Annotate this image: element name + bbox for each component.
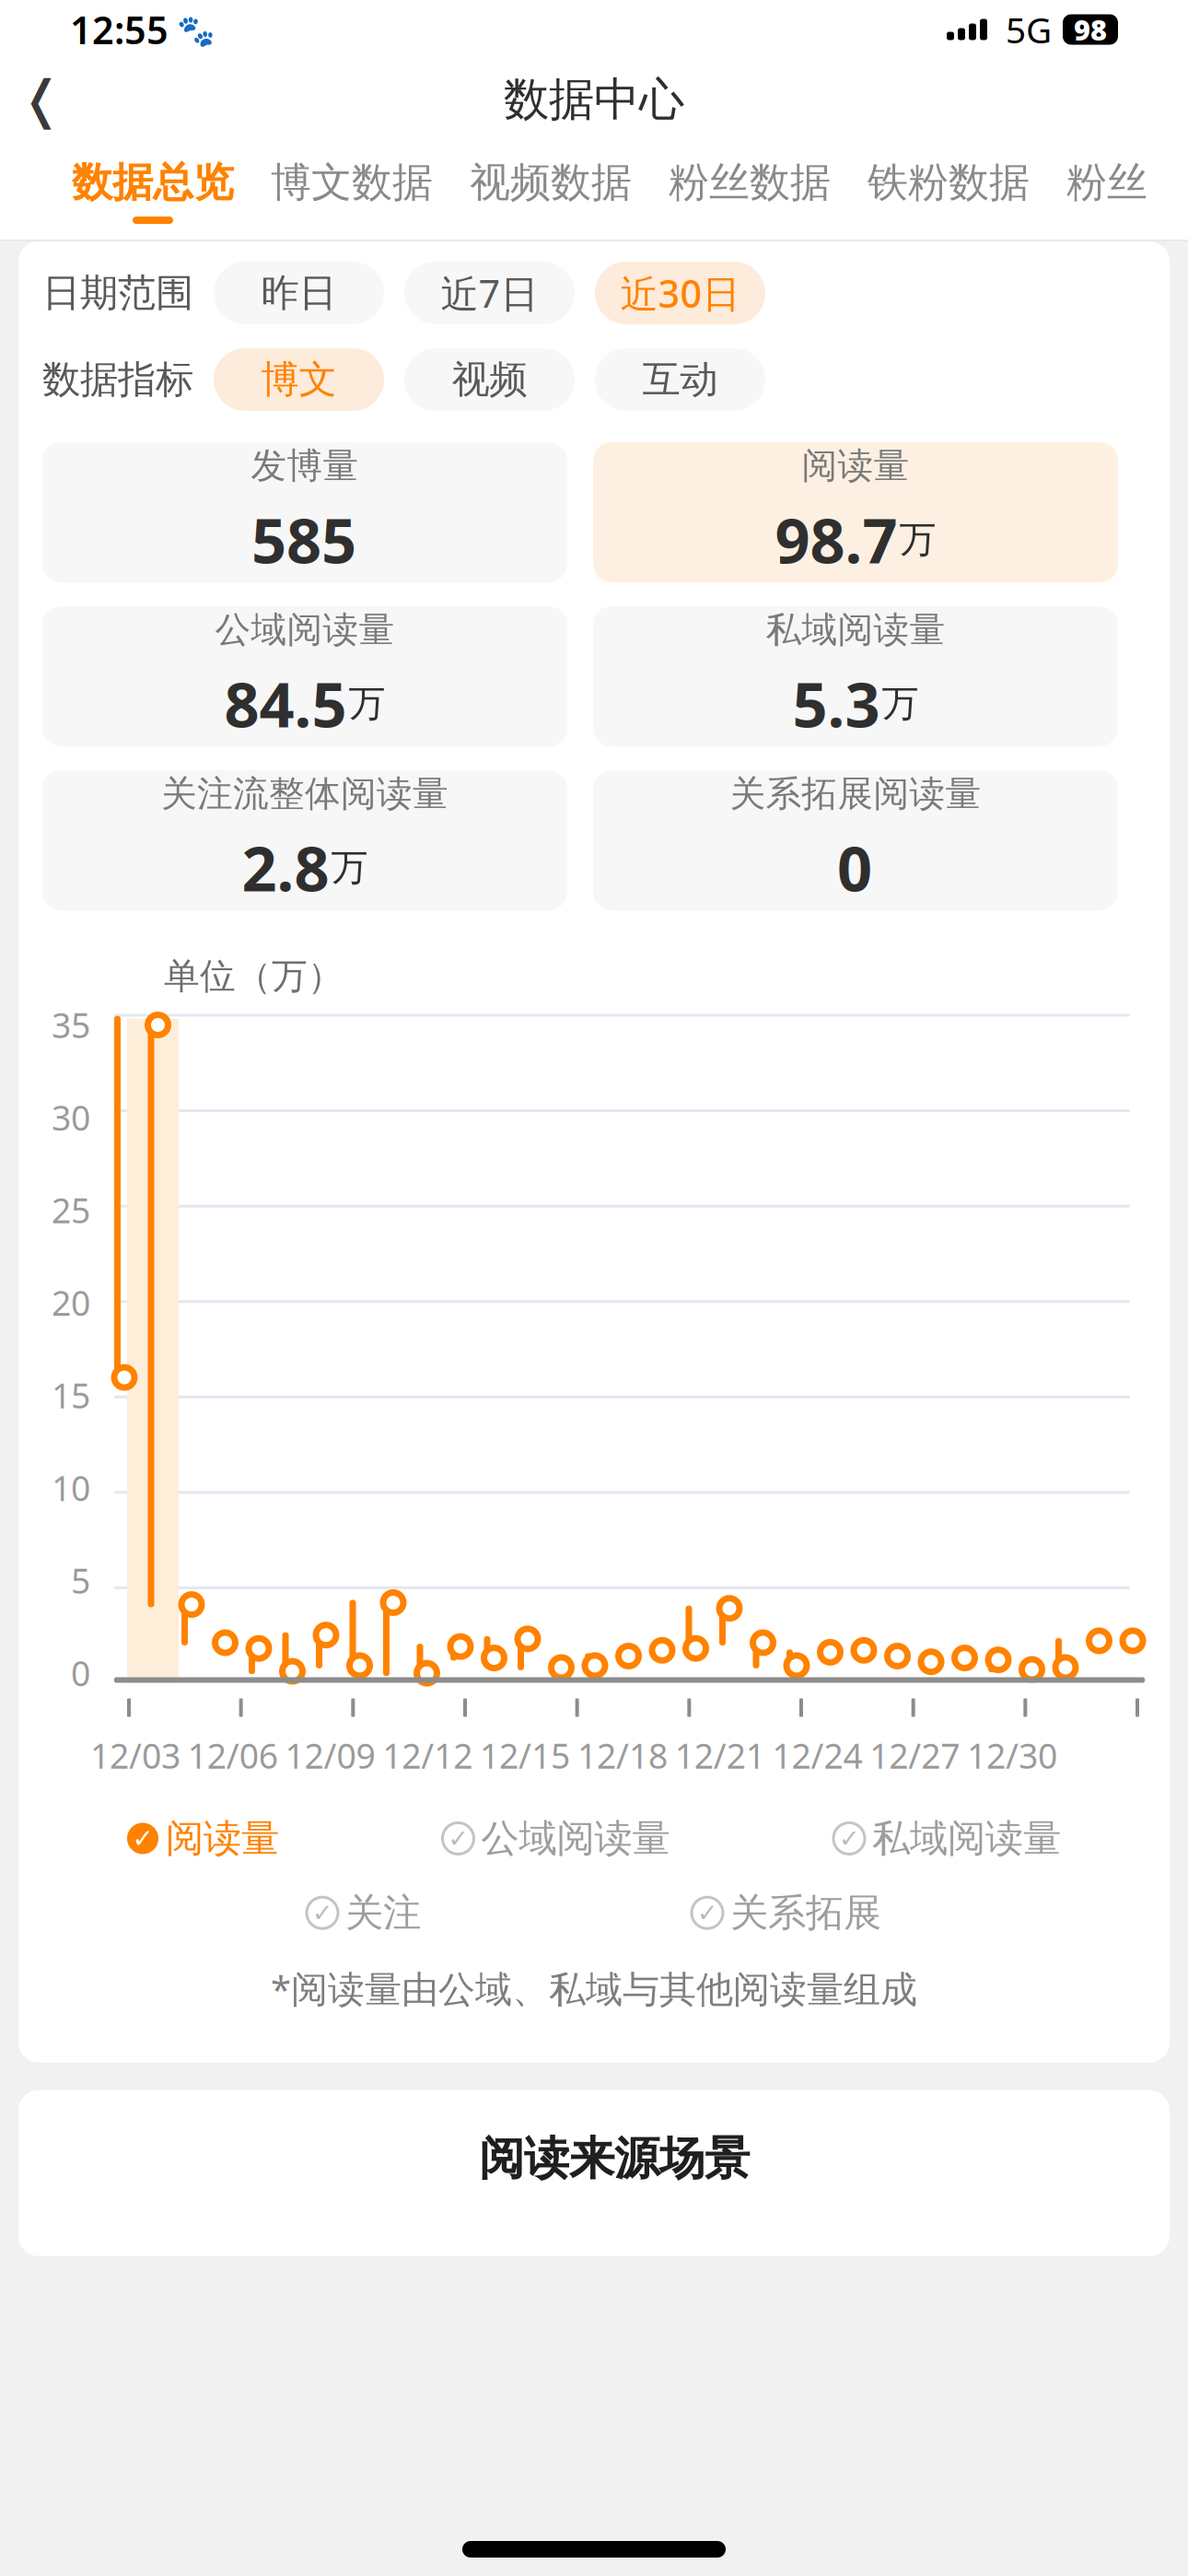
button[interactable]: 昨日 [214,262,384,324]
button[interactable]: 公域阅读量 [42,606,567,746]
staticText: 5G [987,6,1052,53]
staticText: 20 [52,1280,90,1325]
staticText: 万 [882,681,919,726]
staticText: ✓ [697,1899,717,1927]
button[interactable]: 发博量 [42,442,567,582]
staticText: 公域阅读量 [215,608,395,652]
button[interactable]: ✓ [307,1889,421,1936]
staticText: 12/30 [967,1733,1057,1778]
staticText: 585 [251,499,356,580]
staticText: 近7日 [441,268,538,318]
staticText: 12/12 [382,1733,473,1778]
button[interactable]: ✓ [692,1889,881,1936]
staticText: 关系拓展阅读量 [730,772,981,816]
staticText: 昨日 [261,270,337,316]
staticText: 15 [52,1372,90,1418]
staticText: 阅读量 [802,444,909,488]
button[interactable]: 粉丝数据 [669,154,831,228]
staticText: 近30日 [620,268,740,318]
staticText: 万 [349,681,385,726]
staticText: 5 [71,1557,90,1603]
staticText: 🐾 [169,9,215,50]
staticText: 0 [71,1650,90,1696]
staticText: 关注 [345,1889,421,1936]
button[interactable]: 铁粉数据 [868,154,1030,228]
staticText: 万 [899,517,936,562]
button[interactable]: ✓ [443,1815,670,1862]
staticText: 12/27 [870,1733,960,1778]
staticText: 98.7 [775,499,897,580]
staticText: 日期范围 [42,270,193,316]
staticText: 12:55 [70,4,169,55]
staticText: 98 [1074,11,1107,48]
button[interactable]: Back [0,59,83,140]
staticText: 25 [52,1187,90,1233]
staticText: ✓ [839,1824,859,1852]
button[interactable]: 视频 [404,348,575,411]
staticText: *阅读量由公域、私域与其他阅读量组成 [271,1964,917,2013]
staticText: ✓ [132,1824,153,1853]
staticText: 2.8 [242,827,329,908]
staticText: 铁粉数据 [868,158,1030,207]
staticText: 12/09 [285,1733,375,1778]
staticText: 12/21 [675,1733,765,1778]
staticText: 关系拓展 [730,1889,881,1936]
staticText: 博文数据 [271,158,433,207]
staticText: 阅读量 [166,1815,279,1862]
staticText: 10 [52,1465,90,1510]
staticText: 5.3 [792,663,880,744]
button[interactable]: 数据总览 [72,154,234,228]
staticText: 关注流整体阅读量 [161,772,448,816]
staticText: 发博量 [251,444,359,488]
staticText: 视频 [452,356,527,403]
button[interactable]: 私域阅读量 [593,606,1118,746]
staticText: 84.5 [224,663,347,744]
button[interactable]: 阅读量 [593,442,1118,582]
staticText: ✓ [312,1899,332,1927]
button[interactable]: 关系拓展阅读量 [593,770,1118,910]
button[interactable]: ✓ [833,1815,1061,1862]
staticText: 30 [52,1095,90,1140]
staticText: 12/15 [480,1733,570,1778]
staticText: 单位（万） [164,954,344,998]
staticText: 12/03 [90,1733,181,1778]
button[interactable]: 视频数据 [470,154,632,228]
button[interactable]: 关注流整体阅读量 [42,770,567,910]
staticText: 公域阅读量 [481,1815,670,1862]
button[interactable]: 近7日 [404,262,575,324]
staticText: 互动 [642,356,718,403]
staticText: 12/24 [772,1733,862,1778]
staticText: 0 [837,827,872,908]
button[interactable]: 互动 [595,348,765,411]
staticText: 数据中心 [504,72,684,127]
staticText: 阅读来源场景 [479,2131,750,2187]
button[interactable]: 粉丝 [1066,154,1147,228]
staticText: ❬ [20,70,63,129]
staticText: 数据指标 [42,356,193,403]
staticText: 私域阅读量 [872,1815,1061,1862]
staticText: 粉丝数据 [669,158,831,207]
staticText: ✓ [448,1824,468,1852]
button[interactable]: ✓ [127,1815,279,1862]
staticText: 视频数据 [470,158,632,207]
staticText: 12/06 [188,1733,278,1778]
button[interactable]: 博文 [214,348,384,411]
button[interactable]: 近30日 [595,262,765,324]
staticText: 粉丝 [1066,158,1147,207]
staticText: 博文 [261,356,337,403]
staticText: 私域阅读量 [766,608,945,652]
staticText: 35 [52,1002,90,1048]
staticText: 万 [331,845,368,890]
staticText: 数据总览 [72,158,234,207]
button[interactable]: 博文数据 [271,154,433,228]
staticText: 12/18 [577,1733,668,1778]
